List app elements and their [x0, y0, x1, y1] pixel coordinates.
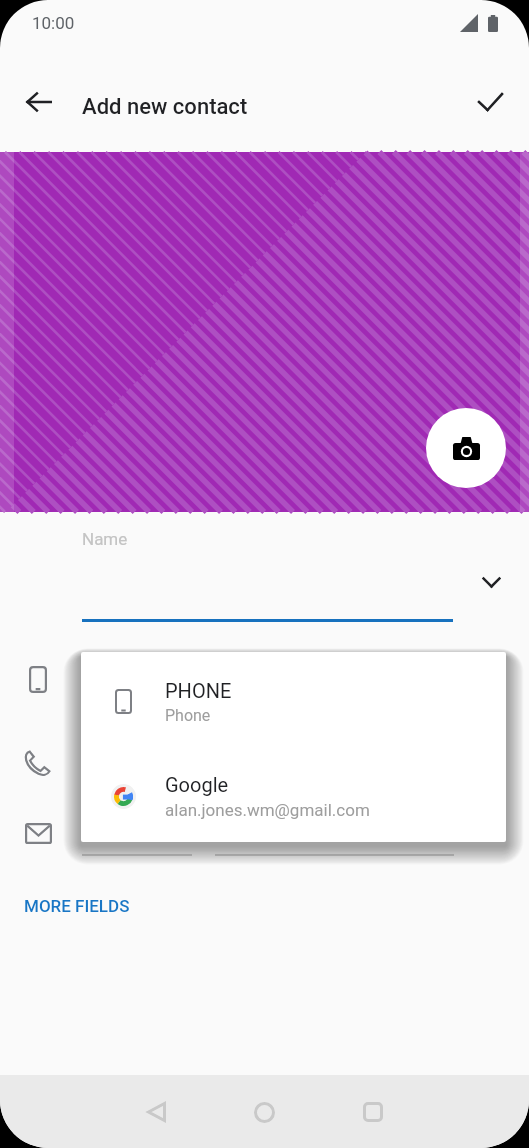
button[interactable]: Expand name: [467, 558, 515, 606]
button[interactable]: Back: [132, 1088, 180, 1136]
button[interactable]: PHONE: [81, 654, 506, 749]
staticText: MORE FIELDS: [24, 896, 130, 916]
button[interactable]: Recent apps: [349, 1088, 397, 1136]
button[interactable]: Phone number: [14, 738, 62, 786]
button[interactable]: MORE FIELDS: [8, 886, 146, 926]
staticText: alan.jones.wm@gmail.com: [165, 800, 370, 820]
staticText: Phone: [165, 706, 211, 725]
button[interactable]: Add photo: [426, 408, 506, 488]
button[interactable]: Phone type: [14, 655, 62, 703]
button[interactable]: Home: [240, 1088, 288, 1136]
button[interactable]: Back: [15, 78, 63, 126]
staticText: Name: [82, 529, 128, 549]
staticText: Google: [165, 773, 229, 796]
staticText: 10:00: [32, 13, 75, 33]
button[interactable]: Google: [81, 749, 506, 842]
staticText: PHONE: [165, 679, 232, 702]
staticText: Add new contact: [82, 94, 248, 120]
button[interactable]: Email: [14, 809, 62, 857]
button[interactable]: Save contact: [466, 78, 514, 126]
